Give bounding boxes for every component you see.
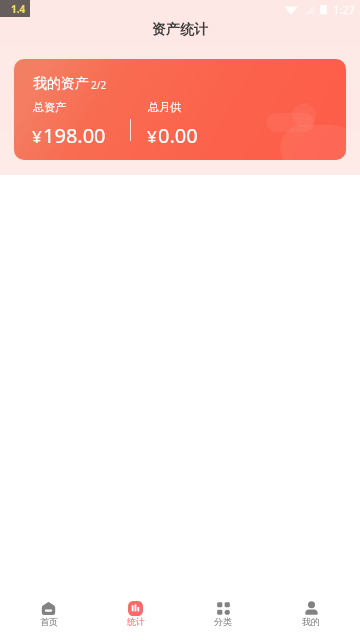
button[interactable]: 首页 [5,587,92,640]
staticText: 198.00 [43,122,106,149]
staticText: 总资产 [33,100,66,114]
staticText: 我的 [302,616,320,627]
staticText: 总月供 [148,100,181,114]
staticText: 1:27 [333,2,355,17]
staticText: 我的资产 [33,75,89,93]
staticText: 1.4 [11,2,26,16]
staticText: 0.00 [158,122,198,149]
staticText: 分类 [214,616,232,627]
staticText: 首页 [40,616,58,627]
staticText: 2/2 [91,78,107,92]
button[interactable]: 分类 [179,587,267,640]
button[interactable]: 统计 [92,587,179,640]
button[interactable]: 我的资产 [14,59,346,160]
button[interactable]: 我的 [267,587,355,640]
staticText: ¥ [32,125,42,148]
staticText: 资产统计 [152,21,208,39]
staticText: ¥ [147,125,157,148]
staticText: 统计 [127,616,145,627]
